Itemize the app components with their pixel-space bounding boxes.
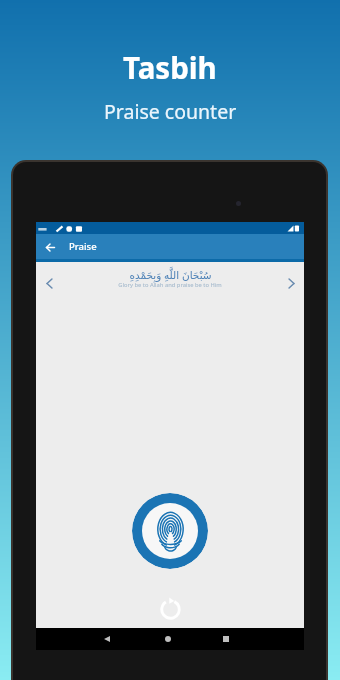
button[interactable]: Previous: [41, 275, 57, 291]
button[interactable]: Recents: [218, 631, 234, 647]
button[interactable]: Back: [41, 238, 59, 256]
staticText: Praise: [69, 240, 97, 253]
staticText: Praise counter: [104, 98, 237, 125]
button[interactable]: Reset counter: [158, 597, 182, 621]
button[interactable]: Tap to count: [132, 493, 208, 569]
staticText: Glory be to Allah and praise be to Him: [118, 281, 222, 289]
staticText: سُبْحَانَ اللَّهِ وَبِحَمْدِهِ: [129, 268, 212, 282]
button[interactable]: Back: [99, 631, 115, 647]
button[interactable]: Home: [160, 631, 176, 647]
staticText: Tasbih: [123, 47, 217, 87]
button[interactable]: Next: [283, 275, 299, 291]
